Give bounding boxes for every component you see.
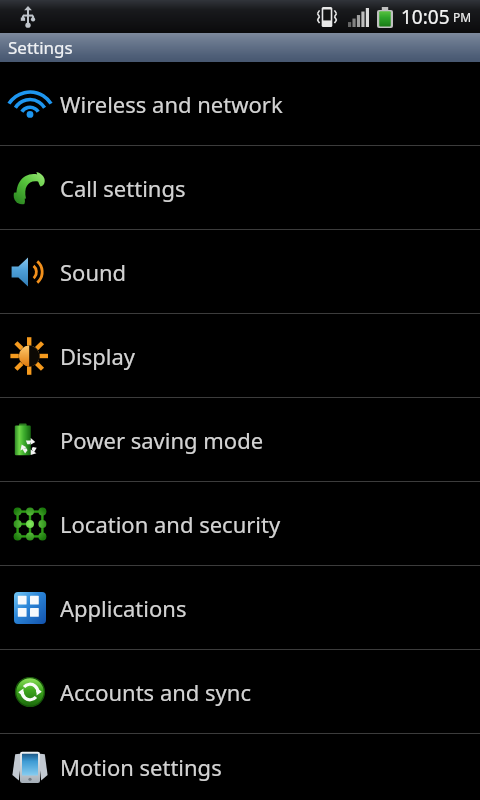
button[interactable]: Applications	[0, 566, 480, 649]
button[interactable]: Location and security	[0, 482, 480, 565]
staticText: Display	[60, 341, 136, 371]
staticText: Motion settings	[60, 752, 222, 782]
staticText: Sound	[60, 257, 127, 287]
staticText: 10:05	[401, 4, 450, 30]
staticText: Accounts and sync	[60, 677, 251, 707]
other: USB connected	[16, 5, 40, 29]
staticText: Call settings	[60, 173, 186, 203]
staticText: Location and security	[60, 509, 281, 539]
button[interactable]: Sound	[0, 230, 480, 313]
button[interactable]: Call settings	[0, 146, 480, 229]
staticText: Applications	[60, 593, 187, 623]
button[interactable]: Display	[0, 314, 480, 397]
button[interactable]: Motion settings	[0, 734, 480, 800]
button[interactable]: Wireless and network	[0, 62, 480, 145]
button[interactable]: Accounts and sync	[0, 650, 480, 733]
staticText: Power saving mode	[60, 425, 264, 455]
staticText: Settings	[8, 36, 73, 59]
staticText: PM	[453, 9, 472, 25]
staticText: Wireless and network	[60, 89, 283, 119]
button[interactable]: Power saving mode	[0, 398, 480, 481]
